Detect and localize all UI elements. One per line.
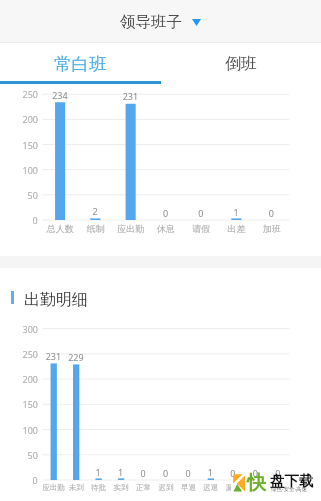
staticText: 绿色·安全·高速 <box>271 485 307 493</box>
button[interactable]: 倒班 <box>160 43 321 84</box>
button[interactable]: 常白班 <box>0 43 160 84</box>
staticText: 领导班子 <box>120 12 182 32</box>
staticText: 快 <box>247 471 266 495</box>
staticText: 常白班 <box>54 53 107 75</box>
staticText: 倒班 <box>225 54 257 74</box>
button[interactable]: 领导班子 <box>120 12 201 32</box>
staticText: 出勤明细 <box>24 290 88 310</box>
staticText: 盘下载 <box>270 472 314 490</box>
